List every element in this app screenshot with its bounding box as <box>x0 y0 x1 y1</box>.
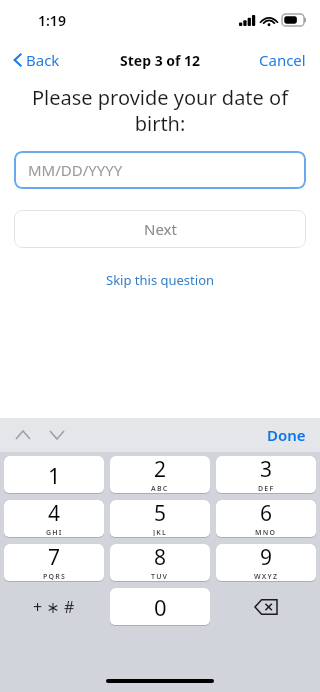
staticText: 0 <box>154 592 167 622</box>
button[interactable]: 6 <box>216 500 316 537</box>
staticText: 1 <box>48 460 61 490</box>
button[interactable]: Skip this question <box>94 267 227 293</box>
staticText: JKL <box>153 528 168 536</box>
button[interactable]: Next <box>14 210 306 248</box>
button[interactable]: 5 <box>110 500 210 537</box>
button[interactable]: 9 <box>216 544 316 581</box>
button[interactable]: 4 <box>4 500 104 537</box>
button[interactable]: 8 <box>110 544 210 581</box>
button[interactable]: Done <box>253 419 320 451</box>
staticText: TUV <box>151 572 169 580</box>
button[interactable]: Next field <box>42 420 72 450</box>
button[interactable]: Cancel <box>249 46 320 74</box>
button[interactable]: Back <box>0 46 70 74</box>
staticText: Step 3 of 12 <box>120 51 201 70</box>
button[interactable]: Symbols <box>4 588 104 626</box>
button[interactable]: 1 <box>4 456 104 493</box>
staticText: 3 <box>260 456 273 484</box>
button[interactable]: MM/DD/YYYY <box>14 151 306 189</box>
staticText: WXYZ <box>254 572 279 580</box>
staticText: 7 <box>48 544 61 572</box>
staticText: Next <box>144 219 177 239</box>
staticText: 1:19 <box>38 11 66 30</box>
button[interactable]: 3 <box>216 456 316 493</box>
staticText: 2 <box>154 456 167 484</box>
staticText: GHI <box>46 528 63 536</box>
button[interactable]: Previous field <box>8 420 38 450</box>
staticText: 9 <box>260 544 273 572</box>
staticText: 4 <box>48 500 61 528</box>
staticText: 6 <box>260 500 273 528</box>
staticText: ABC <box>151 484 169 492</box>
button[interactable]: 0 <box>110 588 210 625</box>
staticText: + ∗ # <box>33 596 75 618</box>
staticText: Back <box>26 50 60 70</box>
staticText: DEF <box>258 484 275 492</box>
button[interactable]: Delete <box>216 588 316 626</box>
button[interactable]: 7 <box>4 544 104 581</box>
button[interactable]: 2 <box>110 456 210 493</box>
staticText: PQRS <box>43 572 66 580</box>
staticText: Please provide your date of birth: <box>24 84 296 137</box>
staticText: 8 <box>154 544 167 572</box>
staticText: MNO <box>255 528 277 536</box>
staticText: MM/DD/YYYY <box>28 160 123 180</box>
staticText: 5 <box>154 500 167 528</box>
